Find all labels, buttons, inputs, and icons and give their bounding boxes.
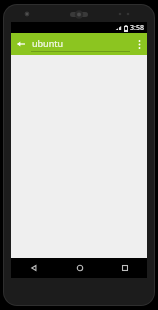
button[interactable]: ubuntu	[31, 33, 131, 55]
button[interactable]: Home	[57, 258, 102, 278]
staticText: 3:58	[130, 23, 144, 33]
button[interactable]: Recent apps	[102, 258, 147, 278]
staticText: ubuntu	[32, 37, 64, 49]
button[interactable]: Back	[11, 258, 57, 278]
button[interactable]: More options	[131, 33, 147, 55]
button[interactable]: Navigate up	[11, 33, 31, 55]
